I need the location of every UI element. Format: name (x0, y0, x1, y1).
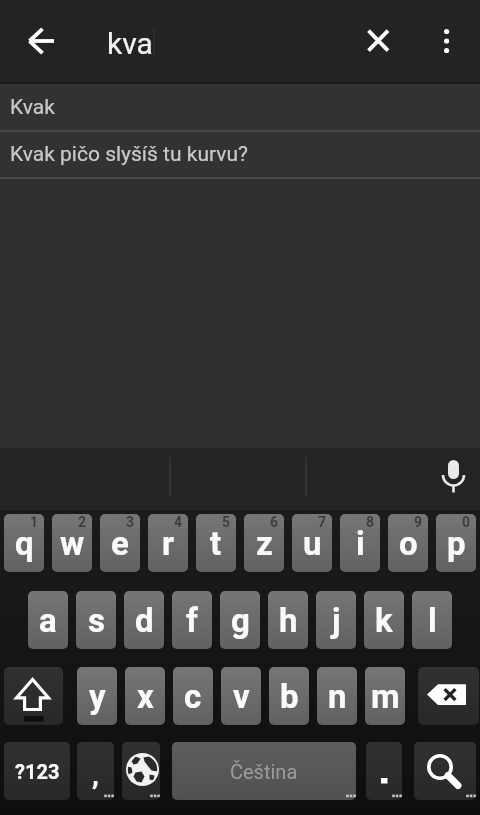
staticText: z (256, 524, 273, 563)
button[interactable]: c (173, 667, 213, 725)
staticText: 3 (126, 514, 135, 530)
staticText: x (137, 677, 154, 716)
button[interactable]: l (412, 591, 452, 649)
button[interactable]: k (364, 591, 404, 649)
button[interactable]: Kvak pičo slyšíš tu kurvu? (0, 132, 480, 177)
staticText: kva (107, 26, 153, 61)
staticText: t (210, 524, 222, 563)
staticText: r (162, 524, 175, 563)
button[interactable]: ?123 (4, 742, 70, 800)
button[interactable]: u (292, 514, 332, 572)
staticText: b (280, 677, 299, 716)
button[interactable]: Kvak (0, 84, 480, 130)
staticText: 8 (366, 514, 375, 530)
staticText: 4 (174, 514, 183, 530)
button[interactable]: x (125, 667, 165, 725)
staticText: u (303, 524, 322, 563)
staticText: h (279, 601, 298, 640)
staticText: 2 (78, 514, 87, 530)
staticText: y (89, 677, 106, 716)
button[interactable]: e (100, 514, 140, 572)
staticText: 5 (222, 514, 231, 530)
button[interactable]: t (196, 514, 236, 572)
staticText: a (39, 601, 57, 640)
staticText: i (356, 524, 365, 563)
staticText: n (328, 677, 347, 716)
staticText: l (428, 601, 437, 640)
staticText: p (447, 524, 466, 563)
staticText: 1 (30, 514, 39, 530)
staticText: g (231, 601, 250, 640)
staticText: 0 (462, 514, 471, 530)
button[interactable]: q (4, 514, 44, 572)
button[interactable]: v (221, 667, 261, 725)
staticText: Kvak (10, 95, 55, 120)
button[interactable]: p (436, 514, 476, 572)
button[interactable]: f (172, 591, 212, 649)
button[interactable]: o (388, 514, 428, 572)
button[interactable]: j (316, 591, 356, 649)
button[interactable]: r (148, 514, 188, 572)
button[interactable]: y (77, 667, 117, 725)
button[interactable]: z (244, 514, 284, 572)
button[interactable] (354, 17, 402, 65)
button[interactable]: s (76, 591, 116, 649)
staticText: ?123 (15, 760, 60, 783)
button[interactable]: g (220, 591, 260, 649)
button[interactable]: w (52, 514, 92, 572)
button[interactable]: a (28, 591, 68, 649)
button[interactable]: m (365, 667, 405, 725)
button[interactable]: i (340, 514, 380, 572)
staticText: Čeština (230, 760, 298, 783)
staticText: w (60, 524, 85, 563)
button[interactable] (4, 667, 63, 725)
button[interactable] (428, 450, 478, 508)
staticText: j (332, 601, 341, 640)
staticText: e (111, 524, 129, 563)
button[interactable] (414, 742, 476, 800)
staticText: Kvak pičo slyšíš tu kurvu? (10, 142, 248, 167)
button[interactable]: b (269, 667, 309, 725)
button[interactable]: d (124, 591, 164, 649)
staticText: 6 (270, 514, 279, 530)
staticText: 7 (318, 514, 327, 530)
button[interactable]: n (317, 667, 357, 725)
staticText: o (399, 524, 418, 563)
button[interactable] (418, 667, 479, 725)
staticText: k (375, 601, 393, 640)
staticText: m (371, 677, 400, 716)
staticText: , (92, 758, 99, 791)
staticText: f (186, 601, 198, 640)
button[interactable]: h (268, 591, 308, 649)
staticText: 9 (414, 514, 423, 530)
button[interactable]: Čeština (172, 742, 356, 800)
staticText: s (88, 601, 105, 640)
button[interactable] (18, 17, 66, 65)
button[interactable] (122, 742, 160, 800)
staticText: d (135, 601, 154, 640)
button[interactable] (366, 742, 402, 800)
staticText: q (15, 524, 34, 563)
button[interactable]: , (77, 742, 114, 800)
staticText: v (233, 677, 250, 716)
button[interactable] (427, 17, 467, 65)
staticText: c (184, 677, 202, 716)
